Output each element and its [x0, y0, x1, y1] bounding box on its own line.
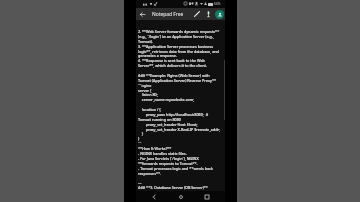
staticText: ---: [138, 180, 142, 185]
button[interactable]: Account: [215, 10, 224, 19]
staticText: (e.g., `/login`) to an Application Serve…: [138, 34, 214, 39]
staticText: Notepad Free: [152, 11, 184, 18]
staticText: - Tomcat processes logic and **sends bac…: [138, 166, 213, 171]
staticText: Tomcat running on 8080: [138, 117, 181, 122]
staticText: logic**, retrieves data from the databas…: [138, 49, 219, 54]
staticText: 2. **Web Server forwards dynamic request…: [138, 29, 220, 34]
button[interactable]: Voice input: [204, 8, 212, 20]
button[interactable]: Recent apps: [199, 191, 215, 202]
staticText: }: [138, 136, 140, 141]
staticText: 3. **Application Server processes busine…: [138, 44, 214, 49]
button[interactable]: Home: [173, 191, 189, 202]
staticText: }: [138, 131, 144, 136]
staticText: Tomcat).: [138, 39, 154, 44]
staticText: 4. **Response is sent back to the Web: [138, 58, 205, 63]
staticText: 54%: [214, 2, 221, 6]
button[interactable]: Edit: [191, 8, 202, 20]
staticText: listen 80;: [138, 92, 158, 97]
staticText: ```nginx: [138, 83, 152, 88]
staticText: ### **Example: Nginx (Web Server) with: [138, 73, 210, 78]
staticText: server_name mywebsite.com;: [138, 97, 195, 102]
staticText: location / {: [138, 107, 161, 112]
staticText: proxy_set_header Host $host;: [138, 122, 198, 127]
staticText: Tomcat (Application Server) Reverse Prox…: [138, 78, 217, 83]
staticText: ```: [138, 141, 142, 146]
button[interactable]: Back: [136, 8, 148, 20]
staticText: ### **3. Database Server (DB Server)**: [138, 185, 208, 190]
staticText: - NGINX handles static files.: [138, 151, 187, 156]
staticText: server {: [138, 88, 152, 93]
staticText: **How It Works?**: [138, 146, 172, 151]
staticText: proxy_pass http://localhost:8080; #: [138, 112, 209, 117]
staticText: **forwards requests to Tomcat**.: [138, 161, 198, 166]
button[interactable]: Back: [146, 191, 162, 202]
staticText: generates a response.: [138, 53, 177, 58]
staticText: responses**.: [138, 171, 161, 176]
staticText: - For Java Servlets (`/login`), NGINX: [138, 156, 199, 161]
staticText: Server**, which delivers it to the clien…: [138, 63, 207, 68]
staticText: proxy_set_header X-Real-IP $remote_addr;: [138, 127, 221, 132]
